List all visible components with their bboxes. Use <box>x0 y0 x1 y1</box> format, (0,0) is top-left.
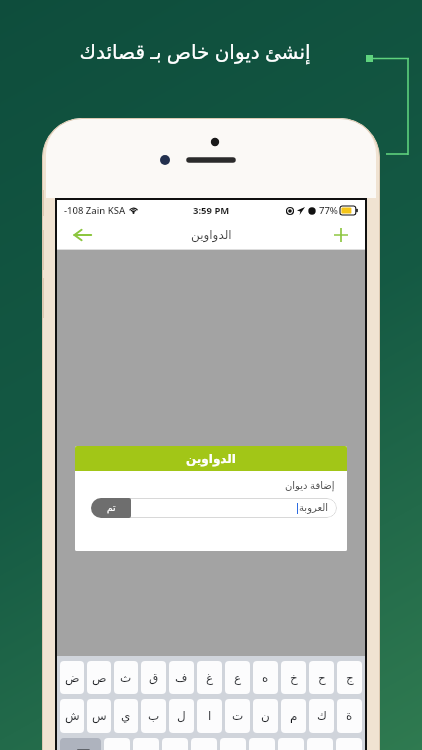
button[interactable]: ش <box>60 699 84 733</box>
staticText: ش <box>65 709 80 723</box>
button[interactable]: Backspace <box>60 738 101 750</box>
button[interactable]: ت <box>225 699 250 733</box>
staticText: غ <box>206 671 214 685</box>
button[interactable]: ء <box>104 738 130 750</box>
staticText: 77% <box>319 204 338 217</box>
staticText: ن <box>261 709 270 723</box>
button[interactable]: ي <box>114 699 138 733</box>
button[interactable]: م <box>281 699 306 733</box>
button[interactable]: ذ <box>191 738 217 750</box>
button[interactable]: ر <box>278 738 304 750</box>
button[interactable]: ط <box>162 738 188 750</box>
button[interactable]: د <box>220 738 246 750</box>
button[interactable]: تم <box>91 498 131 518</box>
staticText: م <box>290 709 298 723</box>
staticText: ج <box>346 671 354 685</box>
staticText: ه <box>262 671 269 685</box>
staticText: ق <box>149 671 159 685</box>
staticText: إضافة ديوان <box>285 478 335 492</box>
staticText: ض <box>65 671 80 685</box>
button[interactable]: Back <box>67 220 97 250</box>
staticText: تم <box>107 503 116 513</box>
staticText: الدواوين <box>191 228 232 242</box>
button[interactable]: و <box>307 738 333 750</box>
staticText: إنشئ ديوان خاص بـ قصائدك <box>79 38 311 65</box>
button[interactable]: ن <box>253 699 278 733</box>
staticText: ي <box>121 709 131 723</box>
button[interactable]: ق <box>141 661 166 694</box>
button[interactable]: ى <box>336 738 362 750</box>
staticText: ب <box>148 709 160 723</box>
staticText: خ <box>290 671 298 685</box>
button[interactable]: ة <box>337 699 362 733</box>
button[interactable]: ص <box>87 661 111 694</box>
staticText: ف <box>175 671 188 685</box>
button[interactable]: ث <box>114 661 138 694</box>
staticText: ح <box>318 671 326 685</box>
button[interactable]: ح <box>309 661 334 694</box>
staticText: الدواوين <box>186 452 236 466</box>
staticText: ع <box>234 671 242 685</box>
button[interactable]: ز <box>249 738 275 750</box>
staticText: ل <box>177 709 186 723</box>
button[interactable]: العروبة <box>97 498 337 518</box>
button[interactable]: ا <box>197 699 222 733</box>
staticText: العروبة <box>299 502 329 514</box>
button[interactable]: Add <box>327 221 355 249</box>
button[interactable]: س <box>87 699 111 733</box>
staticText: ة <box>346 709 353 723</box>
button[interactable]: ج <box>337 661 362 694</box>
staticText: ص <box>92 671 107 685</box>
button[interactable]: خ <box>281 661 306 694</box>
staticText: ث <box>120 671 132 685</box>
button[interactable]: ظ <box>133 738 159 750</box>
staticText: ا <box>208 709 212 723</box>
staticText: 3:59 PM <box>193 204 230 217</box>
button[interactable]: ه <box>253 661 278 694</box>
staticText: -108 Zain KSA <box>64 204 126 217</box>
button[interactable]: ل <box>169 699 194 733</box>
button[interactable]: ك <box>309 699 334 733</box>
button[interactable]: غ <box>197 661 222 694</box>
staticText: ك <box>317 709 327 723</box>
button[interactable]: ض <box>60 661 84 694</box>
staticText: ت <box>232 709 244 723</box>
button[interactable]: ف <box>169 661 194 694</box>
button[interactable]: ع <box>225 661 250 694</box>
button[interactable]: ب <box>141 699 166 733</box>
staticText: س <box>92 709 107 723</box>
